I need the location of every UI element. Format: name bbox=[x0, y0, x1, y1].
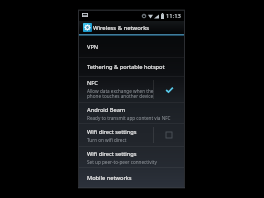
button[interactable]: Tethering & portable hotspot bbox=[79, 58, 184, 76]
staticText: Wifi direct settings bbox=[87, 150, 137, 158]
button[interactable]: Wireless & networks bbox=[79, 21, 184, 34]
button[interactable]: Wifi direct off bbox=[154, 124, 184, 146]
button[interactable]: NFC on bbox=[154, 77, 184, 102]
staticText: Android Beam bbox=[87, 106, 126, 114]
staticText: VPN bbox=[87, 43, 99, 51]
button[interactable]: Android Beam bbox=[79, 103, 184, 123]
staticText: Wifi direct settings bbox=[87, 128, 137, 136]
staticText: NFC bbox=[87, 79, 98, 87]
staticText: Allow data exchange when the phone touch… bbox=[87, 88, 154, 100]
button[interactable]: VPN bbox=[79, 36, 184, 57]
button[interactable]: NFC bbox=[79, 77, 184, 102]
staticText: Ready to transmit app content via NFC bbox=[87, 115, 171, 121]
staticText: 11:13 bbox=[166, 12, 181, 20]
button[interactable]: Wifi direct settings bbox=[79, 147, 184, 167]
staticText: Wireless & networks bbox=[93, 24, 150, 32]
staticText: Turn on wifi direct bbox=[87, 137, 127, 143]
staticText: Mobile networks bbox=[87, 174, 132, 182]
button[interactable]: Wifi direct settings bbox=[79, 124, 184, 146]
staticText: Tethering & portable hotspot bbox=[87, 63, 165, 71]
button[interactable]: Mobile networks bbox=[79, 168, 184, 187]
staticText: Set up peer-to-peer connectivity bbox=[87, 159, 157, 165]
